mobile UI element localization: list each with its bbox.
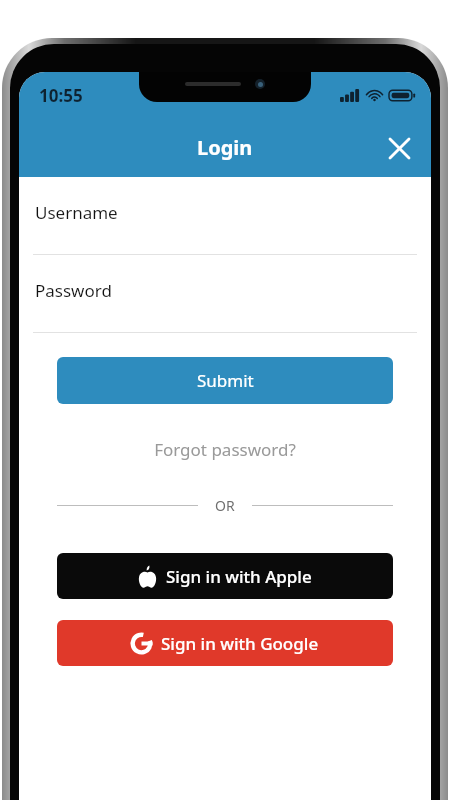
button[interactable]: Username [33, 177, 417, 255]
staticText: Submit [197, 369, 254, 392]
staticText: Forgot password? [154, 438, 296, 461]
button[interactable]: Close [377, 126, 421, 170]
button[interactable]: Sign in with Google [57, 620, 393, 666]
button[interactable]: Submit [57, 357, 393, 404]
staticText: Username [35, 201, 118, 224]
staticText: Sign in with Google [161, 632, 319, 655]
staticText: Login [197, 134, 253, 161]
staticText: Sign in with Apple [166, 565, 312, 588]
staticText: OR [215, 496, 235, 515]
button[interactable]: Forgot password? [33, 432, 417, 466]
staticText: Password [35, 279, 112, 302]
button[interactable]: Password [33, 255, 417, 333]
button[interactable]: Sign in with Apple [57, 553, 393, 599]
staticText: 10:55 [39, 84, 83, 107]
